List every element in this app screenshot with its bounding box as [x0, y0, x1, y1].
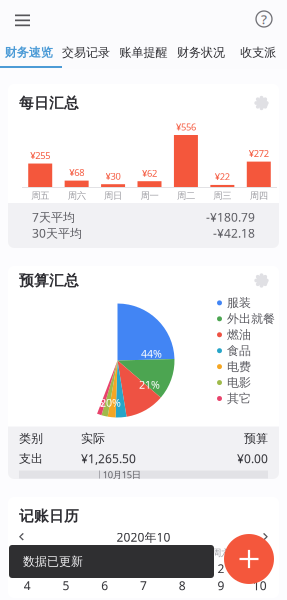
staticText: 周二: [57, 547, 75, 559]
staticText: 2020年10: [116, 529, 170, 545]
button[interactable]: 账单提醒: [115, 39, 172, 66]
button[interactable]: 财务速览: [0, 39, 57, 66]
staticText: 财务状况: [177, 45, 225, 60]
staticText: 外出就餐: [227, 311, 275, 326]
staticText: -¥42.18: [213, 225, 255, 241]
staticText: 5: [63, 577, 70, 593]
staticText: 电费: [227, 359, 251, 374]
staticText: 燃油: [227, 327, 251, 342]
staticText: 预算汇总: [19, 271, 79, 289]
staticText: 周五: [31, 190, 49, 201]
staticText: 周日: [251, 547, 269, 559]
staticText: 7天平均: [32, 209, 75, 225]
staticText: ¥68: [69, 166, 84, 179]
staticText: 财务速览: [5, 45, 53, 60]
button[interactable]: 收支派: [230, 39, 287, 66]
staticText: 预算: [244, 431, 268, 446]
staticText: ¥30: [106, 170, 121, 182]
button[interactable]: 财务状况: [172, 39, 230, 66]
staticText: 8: [179, 577, 186, 593]
staticText: 周一: [140, 190, 158, 201]
button[interactable]: Menu: [4, 2, 41, 35]
staticText: 7: [140, 577, 147, 593]
staticText: 10: [253, 577, 267, 593]
staticText: 每日汇总: [19, 94, 79, 112]
staticText: 周四: [250, 190, 268, 201]
staticText: 记账日历: [19, 507, 79, 525]
staticText: 9: [217, 577, 224, 593]
staticText: 2: [217, 560, 224, 576]
staticText: 周日: [104, 190, 122, 201]
staticText: 周六: [212, 547, 230, 559]
staticText: 周一: [18, 547, 36, 559]
staticText: 食品: [227, 343, 251, 358]
staticText: 服装: [227, 295, 251, 310]
staticText: ¥62: [142, 167, 157, 179]
button[interactable]: Settings: [255, 96, 268, 109]
button[interactable]: 交易记录: [57, 39, 115, 66]
staticText: 44%: [141, 346, 162, 361]
staticText: ¥255: [30, 149, 50, 161]
staticText: ¥22: [215, 170, 230, 183]
staticText: 交易记录: [62, 45, 110, 60]
staticText: 6: [101, 577, 108, 593]
staticText: 实际: [81, 431, 105, 446]
staticText: 收支派: [240, 45, 276, 60]
staticText: ?: [261, 10, 267, 28]
staticText: 20%: [100, 395, 121, 410]
staticText: 10月15日: [103, 468, 141, 481]
staticText: 其它: [227, 391, 251, 406]
button[interactable]: Next month: [257, 529, 274, 545]
staticText: -¥180.79: [206, 209, 255, 225]
staticText: 支出: [19, 451, 43, 466]
staticText: 数据已更新: [23, 554, 83, 569]
staticText: 类别: [19, 431, 43, 446]
staticText: 4: [24, 577, 31, 593]
staticText: 账单提醒: [119, 45, 167, 60]
button[interactable]: Previous month: [13, 529, 30, 545]
staticText: ¥272: [249, 147, 269, 160]
staticText: ¥0.00: [237, 450, 268, 466]
staticText: 周三: [213, 190, 231, 201]
staticText: 周二: [177, 190, 195, 201]
button[interactable]: Settings: [255, 274, 268, 287]
staticText: 周六: [68, 190, 86, 201]
staticText: ¥556: [176, 121, 196, 133]
staticText: 30天平均: [32, 225, 82, 241]
staticText: 电影: [227, 375, 251, 390]
staticText: 4%: [89, 395, 104, 410]
staticText: 21%: [139, 377, 160, 392]
button[interactable]: Help: [245, 2, 283, 36]
staticText: ¥1,265.50: [81, 450, 136, 466]
button[interactable]: Add entry: [224, 534, 274, 584]
